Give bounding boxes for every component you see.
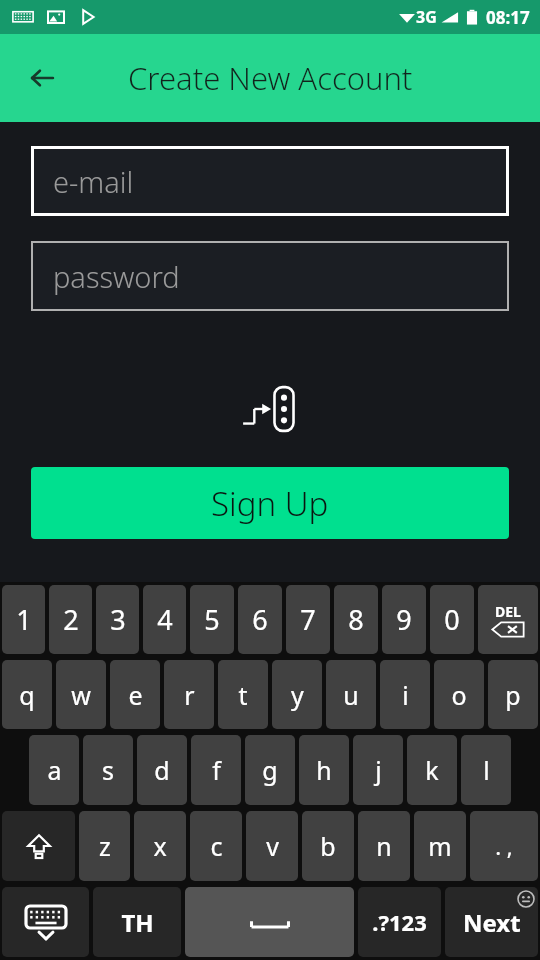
staticText: 9: [396, 601, 412, 638]
staticText: e-mail: [53, 162, 134, 201]
button[interactable]: l: [461, 735, 511, 805]
button[interactable]: .?123: [358, 887, 441, 957]
staticText: i: [402, 678, 409, 712]
staticText: Create New Account: [128, 57, 413, 99]
staticText: 8: [348, 601, 364, 638]
staticText: 3G: [416, 6, 437, 28]
staticText: m: [428, 829, 452, 863]
staticText: a: [47, 753, 62, 787]
button[interactable]: Hide keyboard: [2, 887, 89, 957]
staticText: x: [153, 829, 167, 863]
staticText: password: [53, 257, 180, 296]
button[interactable]: d: [137, 735, 187, 805]
button[interactable]: 3: [96, 585, 139, 654]
staticText: w: [71, 678, 91, 712]
staticText: f: [212, 753, 221, 787]
button[interactable]: 8: [334, 585, 378, 654]
staticText: 7: [300, 601, 316, 638]
button[interactable]: Sign Up: [31, 467, 509, 539]
button[interactable]: TH: [93, 887, 181, 957]
staticText: y: [291, 678, 304, 712]
button[interactable]: 7: [286, 585, 330, 654]
button[interactable]: Back: [14, 50, 70, 106]
staticText: l: [483, 753, 490, 787]
staticText: Next: [463, 906, 521, 939]
button[interactable]: n: [358, 811, 410, 881]
staticText: t: [238, 678, 248, 712]
staticText: . ,: [495, 831, 513, 861]
button[interactable]: s: [83, 735, 133, 805]
staticText: z: [99, 829, 111, 863]
staticText: g: [262, 753, 278, 787]
staticText: u: [343, 678, 359, 712]
button[interactable]: e-mail: [31, 146, 509, 216]
button[interactable]: 4: [143, 585, 186, 654]
staticText: r: [184, 678, 195, 712]
staticText: e: [128, 678, 143, 712]
button[interactable]: c: [190, 811, 242, 881]
button[interactable]: f: [191, 735, 241, 805]
staticText: j: [375, 753, 382, 787]
button[interactable]: r: [164, 660, 214, 729]
button[interactable]: password: [31, 241, 509, 311]
button[interactable]: 2: [49, 585, 92, 654]
staticText: 2: [63, 601, 79, 638]
button[interactable]: a: [29, 735, 79, 805]
staticText: k: [425, 753, 439, 787]
staticText: DEL: [495, 602, 521, 621]
staticText: s: [102, 753, 114, 787]
button[interactable]: z: [79, 811, 130, 881]
staticText: o: [451, 678, 467, 712]
staticText: 08:17: [486, 6, 530, 29]
staticText: Sign Up: [211, 481, 329, 526]
button[interactable]: m: [414, 811, 466, 881]
button[interactable]: Space: [185, 887, 354, 957]
staticText: q: [19, 678, 35, 712]
button[interactable]: h: [299, 735, 349, 805]
staticText: 5: [204, 601, 220, 638]
button[interactable]: Delete: [478, 585, 538, 654]
button[interactable]: i: [380, 660, 430, 729]
button[interactable]: g: [245, 735, 295, 805]
staticText: 0: [444, 601, 460, 638]
staticText: c: [210, 829, 223, 863]
button[interactable]: k: [407, 735, 457, 805]
button[interactable]: 9: [382, 585, 426, 654]
staticText: 6: [252, 601, 268, 638]
staticText: 4: [157, 601, 173, 638]
button[interactable]: q: [2, 660, 52, 729]
button[interactable]: Next: [445, 887, 538, 957]
staticText: v: [266, 829, 279, 863]
button[interactable]: v: [246, 811, 298, 881]
staticText: p: [505, 678, 521, 712]
button[interactable]: . ,: [470, 811, 538, 881]
button[interactable]: Shift: [2, 811, 75, 881]
staticText: 1: [16, 601, 32, 638]
button[interactable]: u: [326, 660, 376, 729]
staticText: d: [154, 753, 170, 787]
button[interactable]: y: [272, 660, 322, 729]
button[interactable]: e: [110, 660, 160, 729]
button[interactable]: 5: [190, 585, 234, 654]
staticText: .?123: [372, 907, 427, 937]
staticText: n: [376, 829, 392, 863]
staticText: h: [316, 753, 332, 787]
button[interactable]: w: [56, 660, 106, 729]
button[interactable]: t: [218, 660, 268, 729]
button[interactable]: 6: [238, 585, 282, 654]
button[interactable]: b: [302, 811, 354, 881]
button[interactable]: j: [353, 735, 403, 805]
button[interactable]: x: [134, 811, 186, 881]
staticText: 3: [110, 601, 126, 638]
button[interactable]: p: [488, 660, 538, 729]
staticText: TH: [121, 906, 154, 939]
button[interactable]: o: [434, 660, 484, 729]
staticText: b: [320, 829, 336, 863]
button[interactable]: 1: [2, 585, 45, 654]
button[interactable]: 0: [430, 585, 474, 654]
